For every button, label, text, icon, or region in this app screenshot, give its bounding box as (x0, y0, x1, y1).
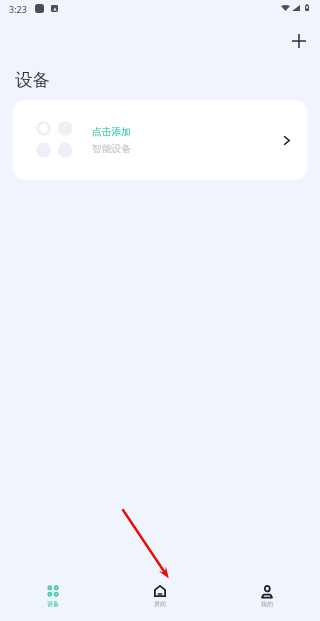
button[interactable]: Add device (283, 25, 315, 57)
staticText: 我的 (261, 600, 273, 607)
button[interactable]: 设备 (0, 573, 106, 621)
staticText: 房间 (154, 600, 166, 607)
staticText: 点击添加 (92, 126, 131, 138)
button[interactable]: 点击添加 (13, 100, 307, 180)
button[interactable]: 我的 (213, 573, 320, 621)
staticText: 设备 (47, 600, 59, 607)
staticText: 智能设备 (92, 143, 132, 155)
staticText: 3:23 (9, 3, 27, 15)
button[interactable]: 房间 (106, 573, 213, 621)
staticText: 设备 (15, 69, 50, 91)
